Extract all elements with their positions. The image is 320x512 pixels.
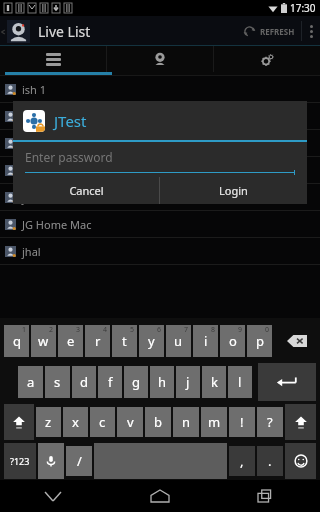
staticText: s bbox=[54, 373, 61, 391]
button[interactable]: b bbox=[145, 407, 171, 437]
button[interactable]: Hide keyboard bbox=[0, 480, 106, 512]
button[interactable]: Cancel bbox=[13, 177, 159, 204]
staticText: ! bbox=[240, 413, 244, 431]
button[interactable]: m bbox=[201, 407, 227, 437]
button[interactable]: . bbox=[257, 446, 283, 476]
button[interactable]: ?123 bbox=[4, 443, 36, 479]
button[interactable]: / bbox=[66, 446, 92, 476]
button[interactable]: g bbox=[124, 366, 148, 398]
button[interactable]: Shift bbox=[4, 404, 34, 440]
staticText: 1 bbox=[22, 325, 27, 335]
button[interactable]: o bbox=[220, 325, 245, 357]
button[interactable] bbox=[0, 130, 320, 156]
button[interactable]: More options bbox=[302, 16, 320, 46]
button[interactable]: i bbox=[193, 325, 218, 357]
staticText: Login bbox=[219, 183, 248, 198]
staticText: l bbox=[238, 373, 242, 391]
button[interactable]: ! bbox=[229, 407, 255, 437]
button[interactable]: Settings tab bbox=[214, 46, 320, 72]
button[interactable]: Enter bbox=[258, 363, 316, 401]
staticText: m bbox=[208, 413, 221, 431]
staticText: g bbox=[132, 373, 140, 391]
button[interactable]: Home bbox=[106, 480, 213, 512]
staticText: 4 bbox=[103, 325, 108, 335]
staticText: 7 bbox=[184, 325, 189, 335]
button[interactable]: Up bbox=[0, 16, 30, 46]
staticText: n bbox=[182, 413, 191, 431]
button[interactable]: Recent apps bbox=[213, 480, 320, 512]
button[interactable] bbox=[0, 157, 320, 183]
button[interactable]: ? bbox=[257, 407, 283, 437]
button[interactable]: c bbox=[90, 407, 115, 437]
button[interactable]: y bbox=[139, 325, 164, 357]
staticText: 8 bbox=[211, 325, 216, 335]
button[interactable]: jhal bbox=[0, 238, 320, 264]
staticText: u bbox=[174, 332, 183, 350]
staticText: Enter password bbox=[25, 149, 113, 165]
button[interactable]: z bbox=[36, 407, 61, 437]
staticText: 9 bbox=[238, 325, 243, 335]
staticText: , bbox=[240, 452, 244, 470]
staticText: ish 1 bbox=[22, 82, 47, 97]
staticText: q bbox=[13, 332, 21, 350]
button[interactable]: a bbox=[18, 366, 43, 398]
staticText: r bbox=[95, 332, 101, 350]
button[interactable]: p bbox=[247, 325, 272, 357]
button[interactable]: t bbox=[112, 325, 137, 357]
button[interactable]: List tab bbox=[0, 46, 106, 72]
button[interactable]: Backspace bbox=[278, 322, 316, 360]
staticText: i bbox=[204, 332, 208, 350]
button[interactable]: q bbox=[4, 325, 29, 357]
button[interactable]: n bbox=[173, 407, 199, 437]
staticText: b bbox=[154, 413, 162, 431]
staticText: k bbox=[211, 373, 218, 391]
button[interactable]: Emoji bbox=[285, 443, 316, 479]
staticText: . bbox=[268, 452, 272, 470]
button[interactable]: Camera tab bbox=[107, 46, 213, 72]
button[interactable]: REFRESH bbox=[243, 16, 295, 46]
button[interactable]: j bbox=[176, 366, 200, 398]
staticText: y bbox=[148, 332, 155, 350]
staticText: d bbox=[80, 373, 88, 391]
button[interactable]: l bbox=[228, 366, 252, 398]
staticText: e bbox=[67, 332, 75, 350]
button[interactable]: u bbox=[166, 325, 191, 357]
staticText: 3 bbox=[76, 325, 81, 335]
button[interactable]: , bbox=[229, 446, 255, 476]
staticText: 17:30 bbox=[290, 1, 316, 15]
button[interactable]: h bbox=[150, 366, 174, 398]
staticText: h bbox=[158, 373, 167, 391]
staticText: w bbox=[38, 332, 49, 350]
staticText: / bbox=[77, 452, 82, 470]
staticText: ? bbox=[267, 413, 273, 431]
staticText: jhal bbox=[22, 244, 41, 259]
button[interactable]: r bbox=[85, 325, 110, 357]
button[interactable]: w bbox=[31, 325, 56, 357]
staticText: Live List bbox=[38, 22, 91, 41]
staticText: z bbox=[45, 413, 52, 431]
staticText: a bbox=[27, 373, 35, 391]
button[interactable]: e bbox=[58, 325, 83, 357]
button[interactable] bbox=[0, 103, 320, 129]
button[interactable]: ish 1 bbox=[0, 76, 320, 102]
staticText: o bbox=[229, 332, 237, 350]
staticText: JG Home Mac bbox=[22, 217, 92, 232]
button[interactable]: Enter password bbox=[25, 142, 295, 172]
staticText: 0 bbox=[265, 325, 270, 335]
button[interactable]: d bbox=[72, 366, 96, 398]
button[interactable]: x bbox=[63, 407, 88, 437]
staticText: p bbox=[256, 332, 264, 350]
staticText: t bbox=[122, 332, 127, 350]
button[interactable]: jcb bbox=[0, 184, 320, 210]
button[interactable]: Voice input bbox=[38, 443, 64, 479]
button[interactable]: f bbox=[98, 366, 122, 398]
button[interactable]: Login bbox=[160, 177, 307, 204]
staticText: c bbox=[99, 413, 106, 431]
button[interactable]: JG Home Mac bbox=[0, 211, 320, 237]
button[interactable]: k bbox=[202, 366, 226, 398]
staticText: j bbox=[186, 373, 190, 391]
button[interactable]: Shift bbox=[285, 404, 316, 440]
button[interactable]: s bbox=[45, 366, 70, 398]
button[interactable]: v bbox=[117, 407, 143, 437]
